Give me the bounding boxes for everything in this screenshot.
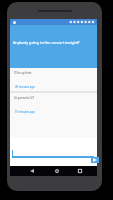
button[interactable]: I'll be up front xyxy=(14,71,32,75)
button[interactable]: Back xyxy=(27,166,37,176)
button[interactable]: Recent apps xyxy=(75,166,85,176)
button[interactable]: Home xyxy=(52,166,62,176)
button[interactable]: 20 minutes ago xyxy=(15,85,35,89)
button[interactable]: 15 minutes ago xyxy=(15,110,35,114)
button[interactable] xyxy=(12,138,94,166)
button[interactable]: Its gonna be LIT xyxy=(14,96,34,100)
button[interactable]: Send xyxy=(91,157,99,163)
button[interactable]: Anybody going to the concert tonight? xyxy=(10,25,97,68)
staticText: Anybody going to the concert tonight? xyxy=(13,40,80,45)
